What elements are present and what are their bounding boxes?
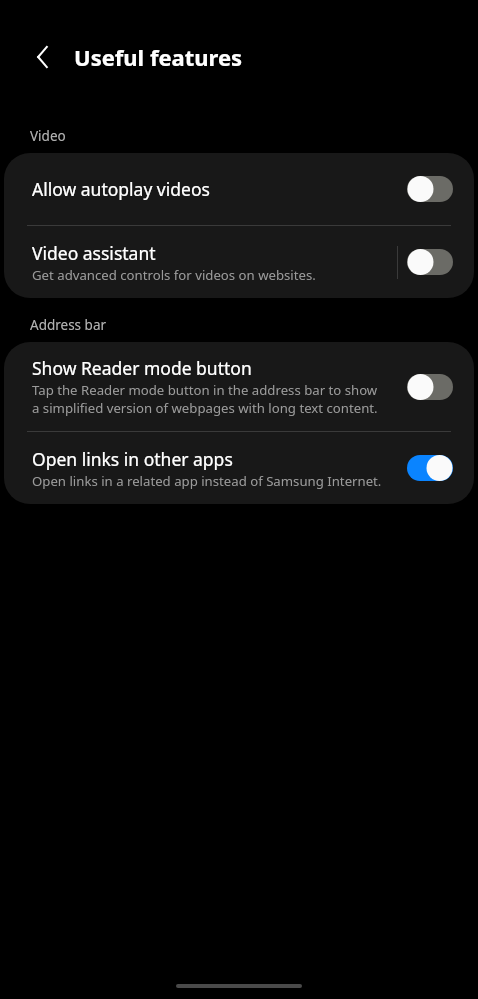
button[interactable]: Back	[19, 33, 67, 81]
staticText: Address bar	[30, 316, 107, 334]
staticText: Show Reader mode button	[32, 356, 252, 380]
staticText: Open links in a related app instead of S…	[32, 472, 382, 490]
button[interactable]: Off	[398, 167, 462, 211]
button[interactable]: Allow autoplay videos	[4, 153, 474, 225]
button[interactable]: Open links in other apps	[4, 432, 474, 504]
button[interactable]: Show Reader mode button	[4, 342, 474, 431]
button[interactable]: Off	[398, 240, 462, 284]
staticText: Open links in other apps	[32, 447, 233, 471]
button[interactable]: Video assistant	[4, 226, 474, 298]
staticText: Tap the Reader mode button in the addres…	[32, 381, 388, 417]
staticText: Video assistant	[32, 241, 156, 265]
button[interactable]: On	[398, 446, 462, 490]
staticText: Video	[30, 127, 66, 145]
staticText: Get advanced controls for videos on webs…	[32, 266, 316, 284]
button[interactable]: Off	[398, 365, 462, 409]
staticText: Allow autoplay videos	[32, 177, 210, 201]
staticText: Useful features	[74, 42, 243, 72]
